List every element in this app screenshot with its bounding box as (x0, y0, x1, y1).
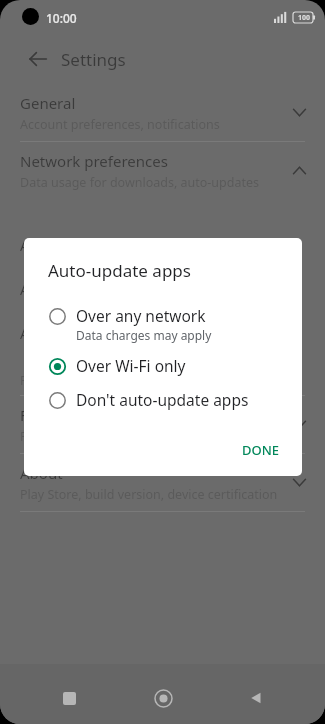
staticText: Family (20, 405, 66, 425)
button[interactable]: Auto-update apps over Wi-Fi (0, 267, 325, 311)
button[interactable]: Don't auto-update apps (24, 383, 302, 417)
staticText: Auto-update apps (48, 259, 191, 282)
button[interactable]: General (0, 84, 325, 141)
staticText: Auto-update apps (20, 236, 138, 255)
staticText: 100 (298, 13, 311, 23)
staticText: About (20, 463, 63, 483)
staticText: 10:00 (46, 10, 77, 26)
button[interactable]: About (0, 454, 325, 511)
staticText: Data charges may apply (76, 327, 212, 343)
button[interactable]: DONE (230, 434, 292, 466)
staticText: General (20, 93, 76, 113)
button[interactable]: Auto-update apps (0, 223, 325, 267)
staticText: Play Store, build version, device certif… (20, 486, 278, 503)
button[interactable]: Over any network (24, 299, 302, 349)
button[interactable]: Over Wi-Fi only (24, 349, 302, 383)
staticText: Over any network (76, 305, 206, 326)
staticText: Don't auto-update apps (76, 389, 249, 410)
button[interactable]: Back (232, 674, 280, 722)
button[interactable]: Back (12, 34, 64, 84)
staticText: Parental control, parent guide (20, 428, 196, 445)
staticText: Fingerprint, purchase authentication (20, 372, 236, 389)
staticText: Data usage for downloads, auto-updates (20, 174, 260, 191)
staticText: Account preferences, notifications (20, 116, 220, 133)
staticText: Over Wi-Fi only (76, 355, 186, 376)
button[interactable]: Network preferences (0, 142, 325, 199)
button[interactable]: Family (0, 396, 325, 453)
staticText: Settings (61, 48, 126, 71)
staticText: DONE (242, 441, 280, 459)
button[interactable]: App download preference (0, 311, 325, 355)
button[interactable]: Home (139, 674, 187, 722)
button[interactable]: Recent apps (45, 674, 93, 722)
staticText: Network preferences (20, 151, 168, 171)
staticText: App download preference (20, 324, 190, 343)
staticText: Auto-update apps over Wi-Fi (20, 280, 207, 299)
